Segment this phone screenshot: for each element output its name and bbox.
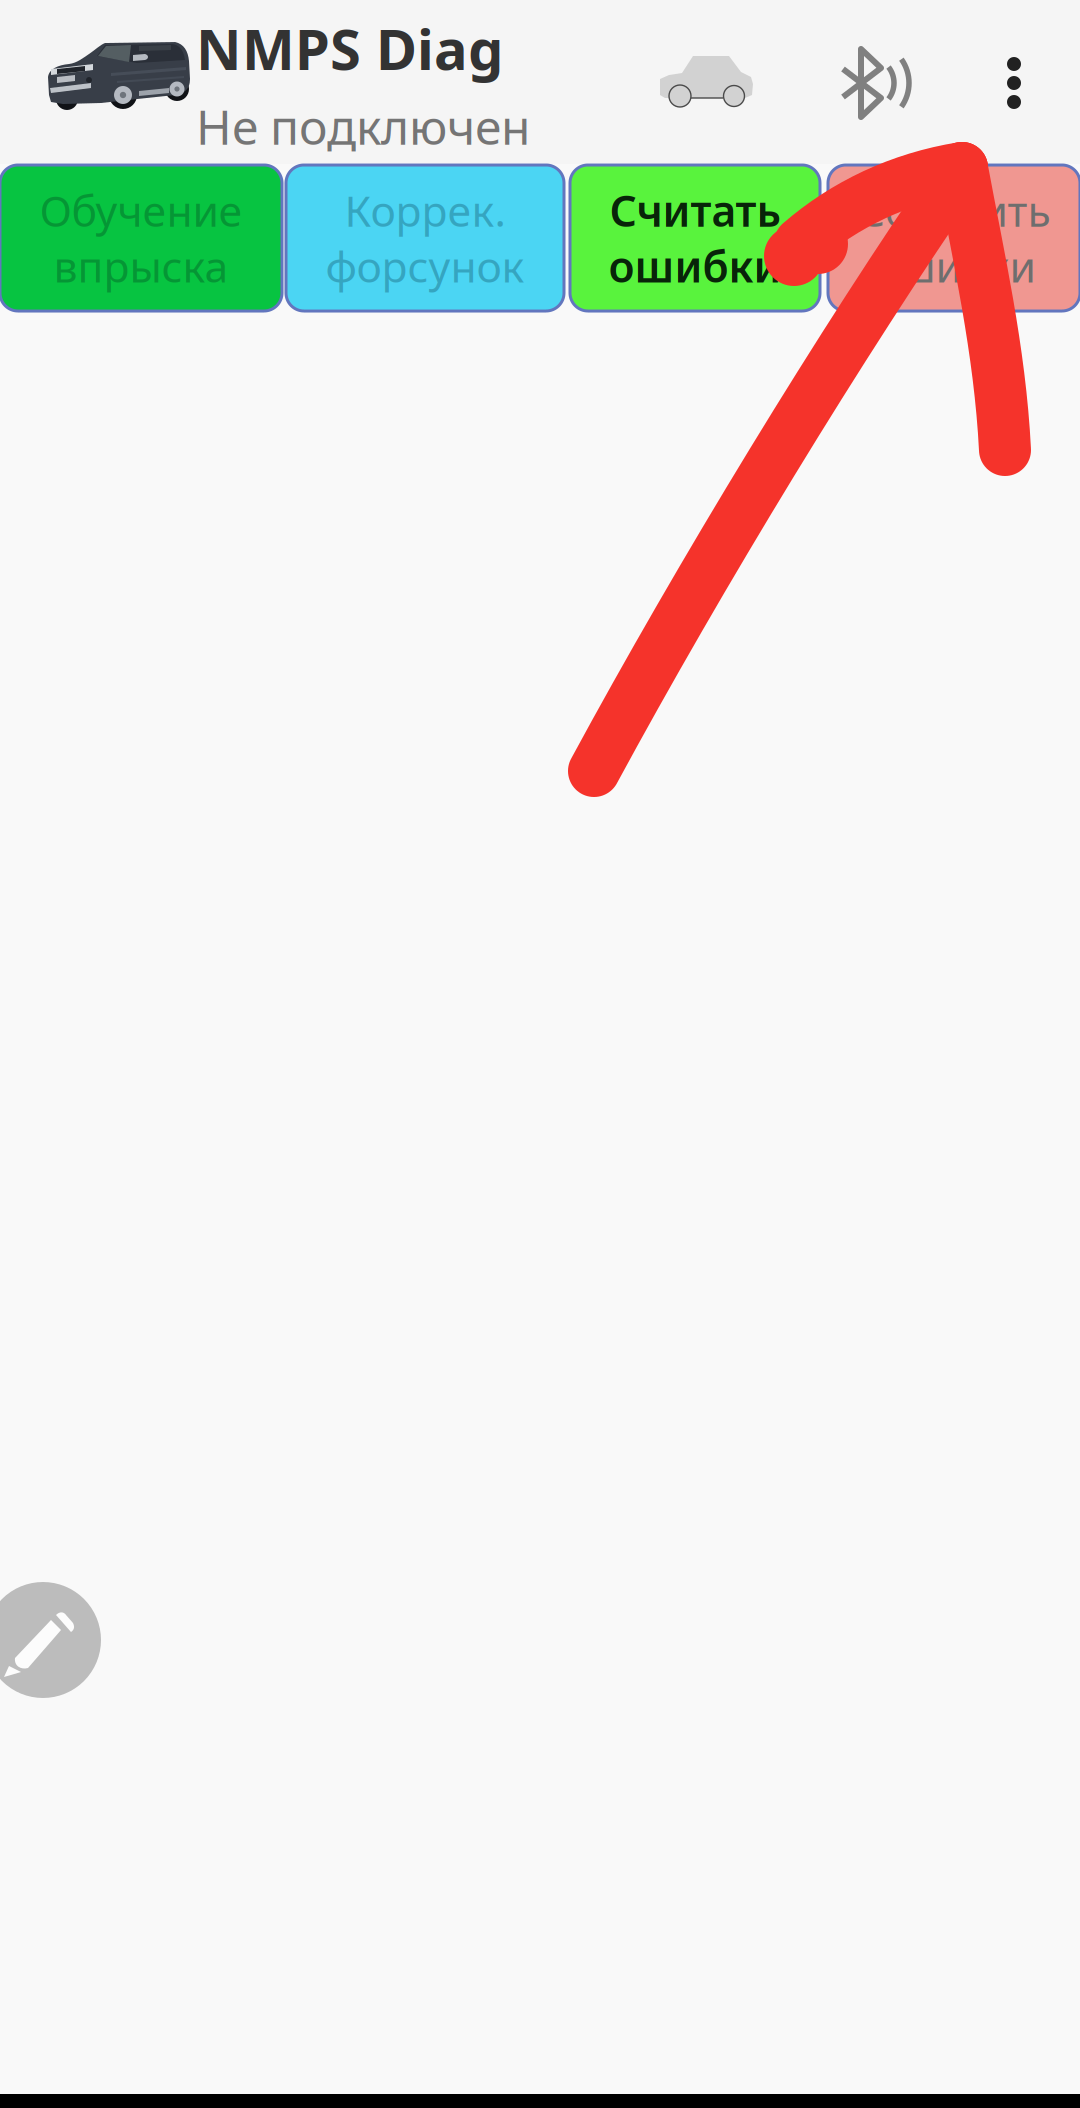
staticText: ошибки [872,237,1035,294]
button[interactable]: Vehicle [633,14,777,148]
button[interactable]: Bluetooth [807,16,949,150]
staticText: Сбросить [857,182,1050,238]
button[interactable]: Считать [570,165,820,311]
staticText: впрыска [53,237,228,294]
staticText: Не подключен [196,94,530,158]
staticText: Коррек. [344,182,505,238]
staticText: NMPS Diag [196,11,503,85]
button[interactable]: Коррек. [286,165,564,311]
staticText: форсунок [325,237,524,294]
button[interactable]: More options [963,16,1065,150]
staticText: Считать [609,182,780,238]
button[interactable]: Сбросить [828,165,1080,311]
staticText: ошибки [608,237,781,294]
button[interactable]: Обучение [0,165,282,311]
button[interactable]: Edit [0,1582,101,1698]
staticText: Обучение [39,182,242,238]
